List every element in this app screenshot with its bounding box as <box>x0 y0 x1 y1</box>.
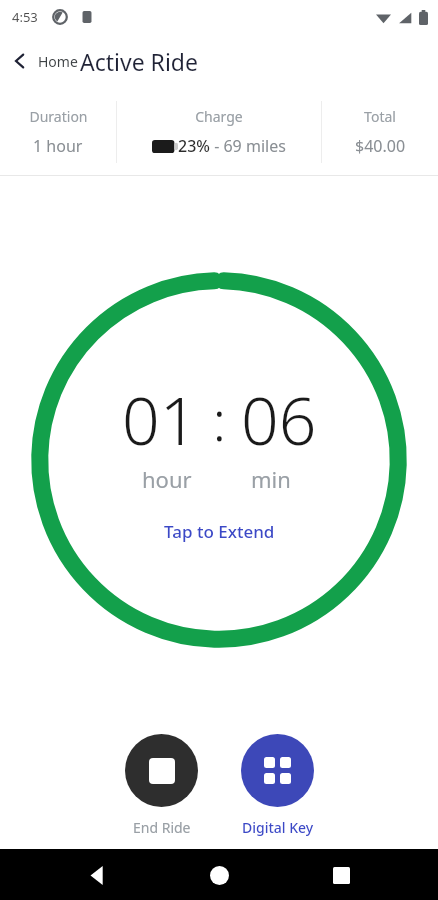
staticText: Total <box>364 107 396 126</box>
button[interactable]: Back to Home <box>0 45 80 77</box>
staticText: 06 <box>241 374 317 464</box>
staticText: 01 <box>122 374 198 464</box>
staticText: 1 hour <box>33 135 83 157</box>
staticText: Duration <box>29 107 88 126</box>
staticText: Digital Key <box>242 818 314 837</box>
button[interactable]: End Ride <box>119 732 204 839</box>
button[interactable]: Recent apps <box>317 851 365 899</box>
staticText: 23% <box>178 135 210 157</box>
button[interactable]: Digital Key <box>235 732 320 839</box>
button[interactable]: Home <box>195 851 243 899</box>
button[interactable]: Tap to Extend <box>152 516 287 547</box>
staticText: min <box>251 464 291 494</box>
button[interactable]: Back <box>74 851 122 899</box>
staticText: Tap to Extend <box>164 520 275 543</box>
staticText: 4:53 <box>12 8 38 26</box>
staticText: End Ride <box>133 818 191 837</box>
staticText: $40.00 <box>355 135 406 157</box>
staticText: Home <box>38 52 78 71</box>
staticText: Active Ride <box>80 46 198 77</box>
staticText: - 69 miles <box>210 135 286 157</box>
staticText: : <box>198 381 241 457</box>
staticText: Charge <box>195 107 243 126</box>
staticText: hour <box>142 464 192 494</box>
